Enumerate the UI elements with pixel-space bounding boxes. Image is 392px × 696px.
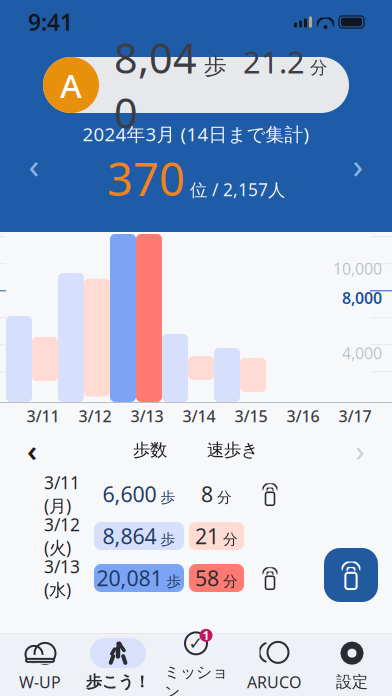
- staticText: 歩: [197, 52, 227, 80]
- staticText: 8,040: [114, 30, 197, 140]
- button[interactable]: 前の月: [12, 143, 56, 187]
- staticText: 8,000: [342, 287, 382, 308]
- staticText: 分: [213, 488, 232, 506]
- staticText: 分: [219, 530, 238, 548]
- staticText: ✓: [188, 633, 203, 653]
- button[interactable]: 次の月: [336, 143, 380, 187]
- staticText: 歩: [156, 530, 175, 548]
- staticText: 歩数: [133, 439, 167, 461]
- staticText: 3/16: [286, 405, 319, 427]
- staticText: 3/12: [78, 405, 111, 427]
- staticText: ミッション: [164, 662, 228, 696]
- staticText: 20,081: [96, 564, 162, 592]
- staticText: 3/15: [234, 405, 267, 427]
- button[interactable]: 設定: [313, 637, 391, 693]
- staticText: 設定: [336, 672, 368, 692]
- staticText: ›: [352, 142, 363, 188]
- button[interactable]: W-UP: [1, 637, 79, 693]
- staticText: 歩こう！: [86, 672, 150, 692]
- staticText: 分: [305, 57, 327, 78]
- button[interactable]: ARUCO: [235, 637, 313, 693]
- staticText: 6,600: [102, 480, 156, 508]
- staticText: 分: [219, 572, 238, 590]
- staticText: A: [60, 63, 82, 107]
- staticText: 速歩き: [207, 439, 259, 461]
- staticText: 3/13: [130, 405, 163, 427]
- staticText: 3/12 (火): [44, 513, 80, 559]
- staticText: 歩: [156, 488, 175, 506]
- staticText: 3/14: [182, 405, 215, 427]
- button[interactable]: 前の週: [10, 430, 54, 470]
- button[interactable]: A: [43, 57, 349, 113]
- staticText: 58: [195, 564, 219, 592]
- staticText: 4,000: [342, 342, 382, 364]
- staticText: 3/13 (水): [44, 555, 80, 601]
- button[interactable]: 歩こう！: [79, 637, 157, 693]
- staticText: 歩: [162, 572, 181, 590]
- button[interactable]: デバイス連携: [324, 548, 378, 602]
- staticText: 3/11: [26, 405, 59, 427]
- staticText: 9:41: [28, 7, 73, 37]
- button[interactable]: ✓: [157, 637, 235, 693]
- staticText: 2024年3月 (14日まで集計): [82, 121, 309, 146]
- staticText: 8,864: [102, 522, 156, 550]
- staticText: 21.2: [227, 41, 305, 82]
- staticText: 位 / 2,157人: [185, 178, 285, 201]
- staticText: 1: [202, 627, 209, 643]
- staticText: ‹: [28, 142, 39, 188]
- staticText: 370: [107, 148, 185, 208]
- staticText: 8: [201, 480, 213, 508]
- staticText: W-UP: [19, 671, 61, 693]
- staticText: ARUCO: [247, 671, 301, 693]
- staticText: ‹: [27, 430, 37, 469]
- staticText: 3/17: [338, 405, 371, 427]
- staticText: ›: [355, 430, 364, 469]
- button[interactable]: 次の週: [338, 430, 382, 470]
- staticText: 21: [195, 522, 219, 550]
- staticText: 10,000: [333, 258, 382, 279]
- staticText: 3/11 (月): [44, 471, 80, 517]
